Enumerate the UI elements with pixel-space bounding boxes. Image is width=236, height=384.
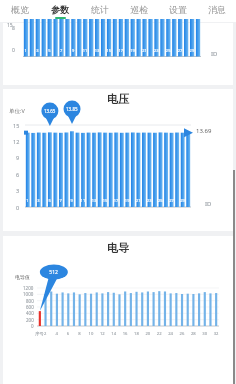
staticText: 统计: [91, 4, 109, 15]
staticText: 消息: [208, 4, 226, 15]
button[interactable]: 统计: [80, 0, 119, 22]
staticText: 巡检: [130, 4, 148, 15]
button[interactable]: 巡检: [119, 0, 158, 22]
button[interactable]: 消息: [197, 0, 236, 22]
button[interactable]: 设置: [158, 0, 197, 22]
staticText: 参数: [51, 4, 69, 15]
staticText: 概览: [11, 4, 29, 15]
button[interactable]: 概览: [0, 0, 40, 22]
staticText: 设置: [169, 4, 187, 15]
button[interactable]: 参数: [40, 0, 80, 22]
